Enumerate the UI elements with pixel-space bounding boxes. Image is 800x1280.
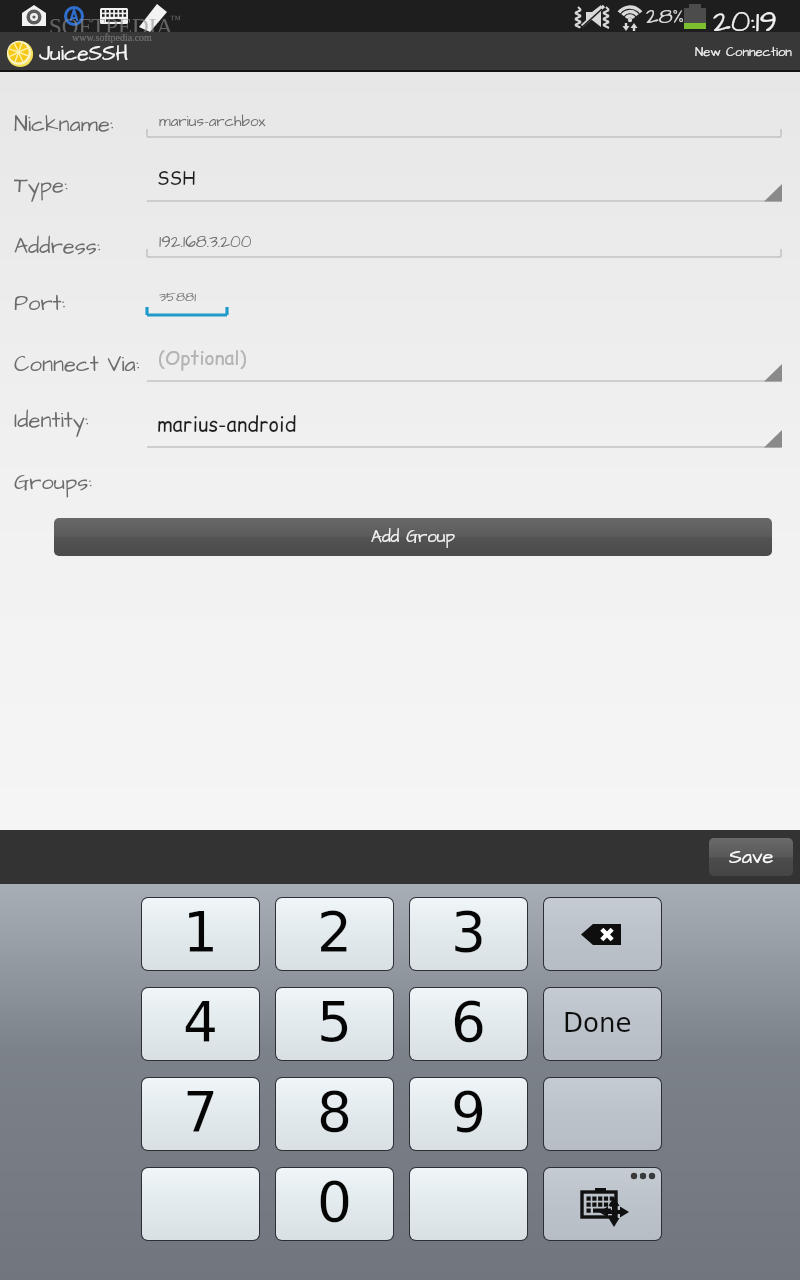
button[interactable]: 5 — [276, 988, 393, 1060]
button[interactable]: Blank key — [142, 1168, 259, 1240]
staticText: Identity: — [14, 405, 89, 436]
button[interactable]: 7 — [142, 1078, 259, 1150]
staticText: 9 — [451, 1080, 486, 1144]
staticText: www.softpedia.com — [72, 32, 152, 43]
staticText: JuiceSSH — [39, 39, 129, 68]
button[interactable]: 6 — [410, 988, 527, 1060]
staticText: SSH — [157, 166, 196, 191]
staticText: Save — [729, 843, 774, 871]
button[interactable]: 0 — [276, 1168, 393, 1240]
staticText: Port: — [14, 288, 66, 319]
staticText: marius-archbox — [159, 111, 266, 132]
staticText: 5 — [317, 990, 352, 1054]
staticText: marius-android — [157, 411, 297, 439]
staticText: 192.168.3.200 — [159, 230, 252, 254]
staticText: 6 — [451, 990, 486, 1054]
staticText: SOFTPEDIA — [49, 14, 173, 39]
staticText: 7 — [183, 1080, 218, 1144]
staticText: Type: — [14, 170, 68, 201]
staticText: 0 — [317, 1170, 352, 1234]
staticText: Address: — [14, 231, 101, 262]
button[interactable]: Save — [709, 838, 793, 876]
staticText: 3 — [451, 900, 486, 964]
staticText: New Connection — [695, 43, 792, 61]
staticText: 35881 — [159, 287, 196, 306]
staticText: 2 — [317, 900, 352, 964]
button[interactable]: Change keyboard — [544, 1168, 661, 1240]
staticText: 8 — [317, 1080, 352, 1144]
staticText: 20:19 — [713, 0, 778, 32]
staticText: ™ — [170, 13, 181, 25]
button[interactable]: 9 — [410, 1078, 527, 1150]
staticText: 4 — [183, 990, 218, 1054]
button[interactable]: Add Group — [54, 518, 772, 556]
button[interactable]: JuiceSSH home — [6, 38, 135, 67]
button[interactable]: 1 — [142, 898, 259, 970]
staticText: Groups: — [14, 467, 92, 498]
staticText: Nickname: — [14, 109, 114, 140]
button[interactable]: 2 — [276, 898, 393, 970]
button[interactable]: Done — [544, 988, 661, 1060]
button[interactable]: New Connection — [692, 36, 795, 68]
staticText: (Optional) — [158, 345, 247, 372]
staticText: Connect Via: — [14, 349, 140, 380]
button[interactable]: Backspace — [544, 898, 661, 970]
button[interactable]: 4 — [142, 988, 259, 1060]
staticText: Add Group — [371, 525, 455, 549]
staticText: Done — [563, 1008, 632, 1038]
button[interactable]: Blank key — [544, 1078, 661, 1150]
button[interactable]: Blank key — [410, 1168, 527, 1240]
staticText: 1 — [183, 900, 218, 964]
button[interactable]: 3 — [410, 898, 527, 970]
button[interactable]: 8 — [276, 1078, 393, 1150]
staticText: 28% — [646, 1, 685, 32]
